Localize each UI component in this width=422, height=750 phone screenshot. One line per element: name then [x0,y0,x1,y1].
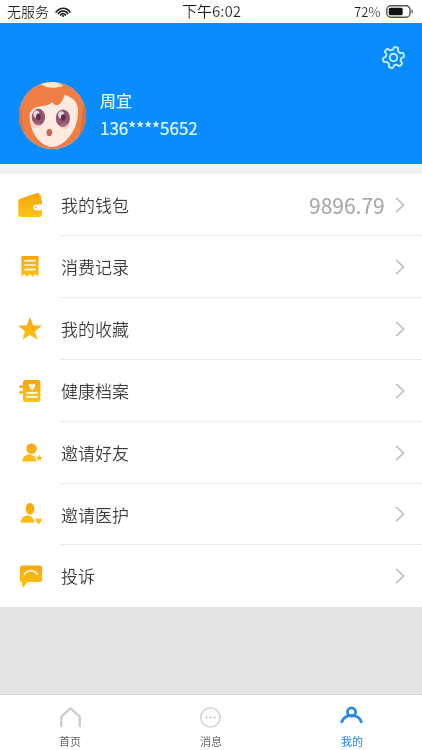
staticText: 消息 [200,733,222,749]
staticText: 无服务 [7,1,49,21]
button[interactable]: 我的钱包 [0,174,422,236]
staticText: 136****5652 [100,115,198,140]
staticText: 投诉 [61,563,95,588]
button[interactable]: 健康档案 [0,360,422,422]
staticText: 健康档案 [61,378,129,403]
button[interactable]: 我的收藏 [0,298,422,360]
staticText: 72% [354,2,381,21]
staticText: 消费记录 [61,254,129,279]
button[interactable]: 首页 [0,696,140,749]
button[interactable]: 投诉 [0,545,422,607]
button[interactable]: 邀请好友 [0,422,422,484]
button[interactable]: 邀请医护 [0,484,422,545]
staticText: 首页 [59,733,81,749]
staticText: 我的 [341,733,363,749]
button[interactable]: 消费记录 [0,236,422,298]
staticText: 周宜 [100,88,133,111]
button[interactable]: 我的 [281,696,422,749]
staticText: 9896.79 [309,190,385,220]
staticText: 我的收藏 [61,316,129,341]
button[interactable]: Settings [377,41,409,73]
staticText: 邀请医护 [61,502,129,527]
staticText: 我的钱包 [61,192,129,217]
staticText: 邀请好友 [61,440,129,465]
staticText: 下午6:02 [182,0,242,22]
button[interactable]: 消息 [140,696,281,749]
